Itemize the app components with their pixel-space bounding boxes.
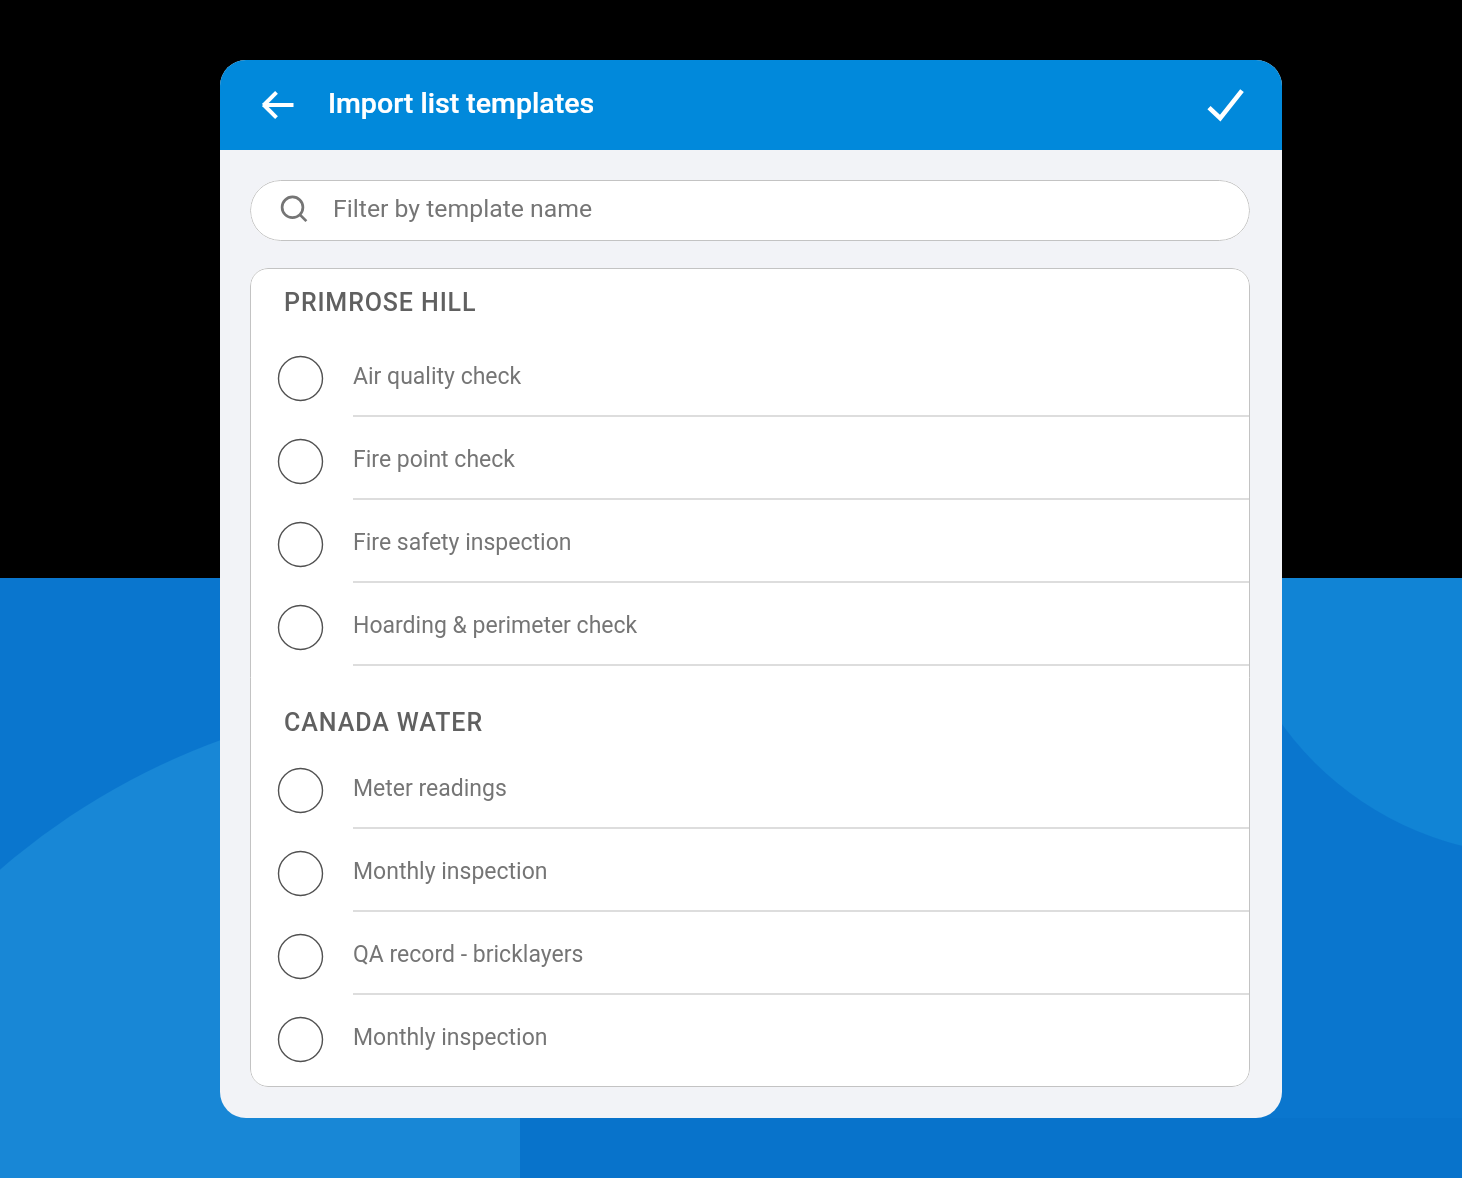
staticText: Fire point check <box>353 446 515 473</box>
button[interactable]: Fire point check <box>250 420 1250 503</box>
staticText: Filter by template name <box>333 194 593 223</box>
staticText: Import list templates <box>328 87 595 120</box>
button[interactable]: Fire safety inspection <box>250 503 1250 586</box>
button[interactable]: Monthly inspection <box>250 832 1250 915</box>
staticText: QA record - bricklayers <box>353 941 584 968</box>
staticText: Meter readings <box>353 775 507 802</box>
button[interactable]: Meter readings <box>250 749 1250 832</box>
staticText: Monthly inspection <box>353 1024 548 1051</box>
button[interactable]: Back <box>242 69 314 141</box>
staticText: CANADA WATER <box>284 708 483 737</box>
staticText: PRIMROSE HILL <box>284 288 477 317</box>
button[interactable]: Hoarding & perimeter check <box>250 586 1250 669</box>
staticText: Monthly inspection <box>353 858 548 885</box>
button[interactable]: Filter by template name <box>250 180 1250 241</box>
button[interactable]: Air quality check <box>250 337 1250 420</box>
staticText: Fire safety inspection <box>353 529 572 556</box>
staticText: Hoarding & perimeter check <box>353 612 638 639</box>
button[interactable]: Confirm <box>1189 69 1261 141</box>
button[interactable]: QA record - bricklayers <box>250 915 1250 998</box>
button[interactable]: Monthly inspection <box>250 998 1250 1081</box>
staticText: Air quality check <box>353 363 522 390</box>
